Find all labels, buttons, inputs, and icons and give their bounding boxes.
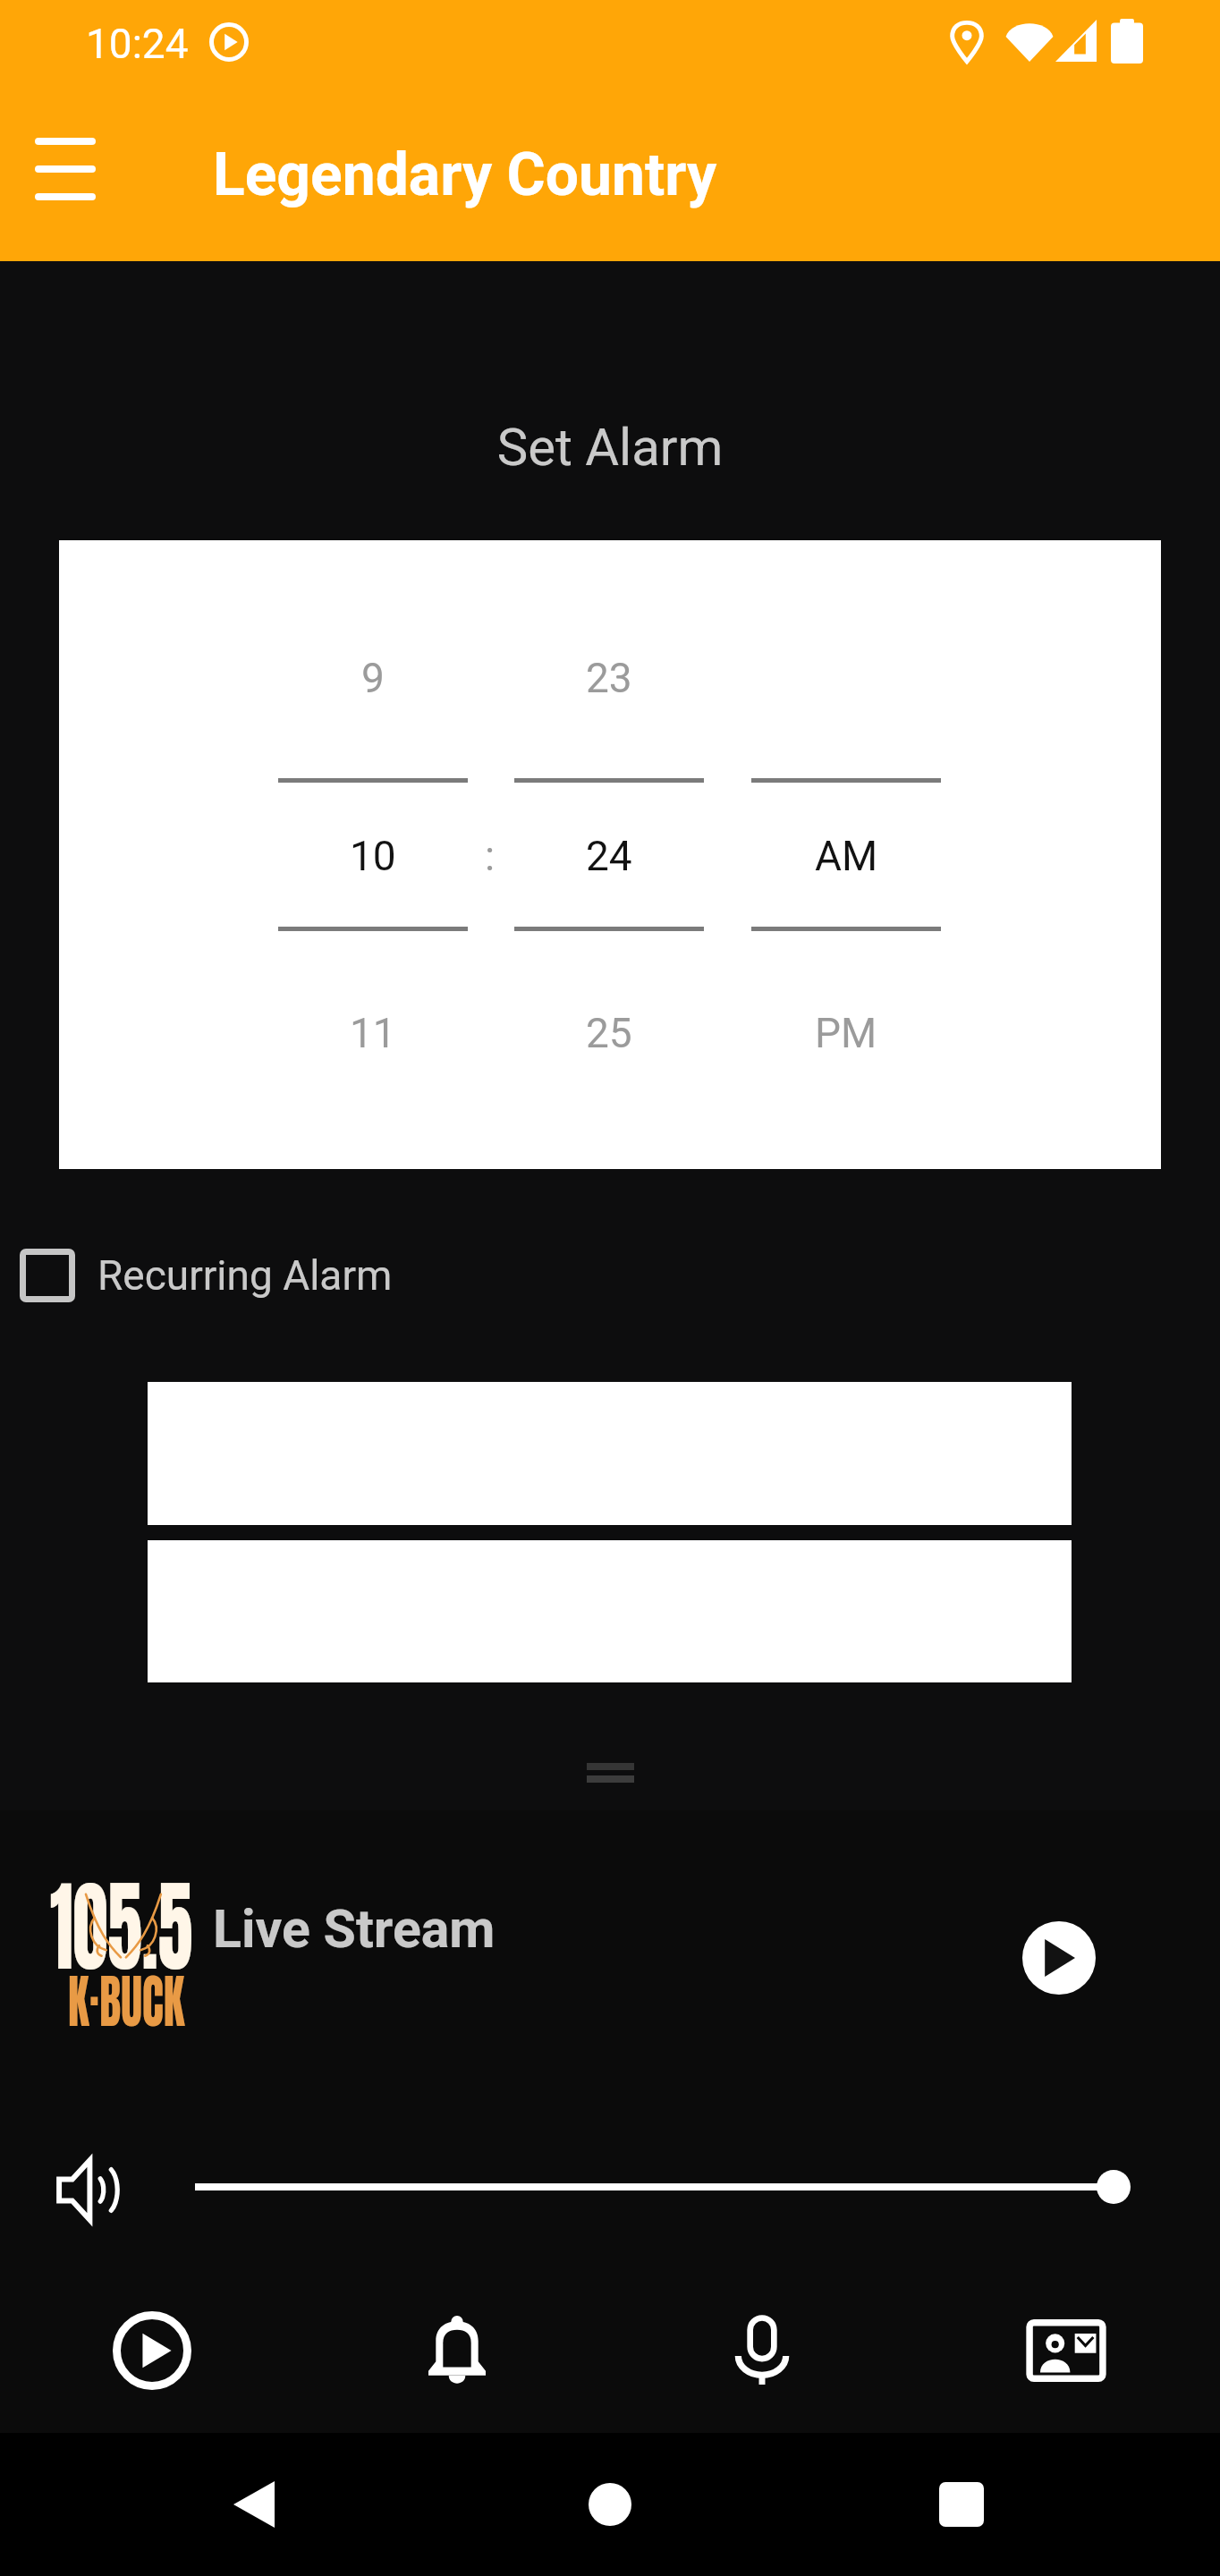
- staticText: 10:24: [86, 20, 189, 68]
- button[interactable]: Cancel alarm: [148, 1540, 1072, 1682]
- button[interactable]: 24: [514, 826, 704, 886]
- button[interactable]: Alarms: [381, 2288, 533, 2413]
- button[interactable]: 25: [514, 1003, 704, 1063]
- button[interactable]: Volume: [1097, 2170, 1131, 2204]
- staticText: K·BUCK: [68, 1957, 185, 2044]
- button[interactable]: Expand player: [0, 1735, 1220, 1810]
- staticText: 11: [350, 1009, 396, 1057]
- staticText: Recurring Alarm: [97, 1251, 393, 1300]
- button[interactable]: PM: [751, 1003, 941, 1063]
- button[interactable]: Voice request: [686, 2288, 838, 2413]
- button[interactable]: AM: [751, 826, 941, 886]
- staticText: 23: [586, 654, 632, 702]
- button[interactable]: Recurring Alarm: [0, 1233, 429, 1318]
- button[interactable]: 23: [514, 648, 704, 708]
- staticText: 9: [361, 654, 385, 702]
- staticText: AM: [815, 832, 878, 880]
- button[interactable]: 11: [278, 1003, 468, 1063]
- button[interactable]: 10: [278, 826, 468, 886]
- staticText: 25: [586, 1009, 632, 1057]
- button[interactable]: Recent apps: [908, 2451, 1015, 2558]
- staticText: :: [485, 832, 496, 880]
- button[interactable]: Contact: [990, 2288, 1142, 2413]
- staticText: PM: [815, 1009, 877, 1057]
- button[interactable]: Play live stream: [1022, 1921, 1096, 1995]
- staticText: Live Stream: [213, 1898, 496, 1960]
- button[interactable]: Play: [76, 2288, 228, 2413]
- button[interactable]: 105.5: [0, 1860, 1002, 2018]
- staticText: Set Alarm: [0, 417, 1220, 478]
- button[interactable]: Open navigation menu: [18, 122, 113, 216]
- staticText: 10: [350, 832, 396, 880]
- button[interactable]: 9: [278, 648, 468, 708]
- button[interactable]: Home: [556, 2451, 664, 2558]
- staticText: Legendary Country: [213, 140, 717, 209]
- staticText: 24: [586, 832, 632, 880]
- button[interactable]: Back: [200, 2451, 308, 2558]
- staticText: 105.5: [50, 1851, 193, 2000]
